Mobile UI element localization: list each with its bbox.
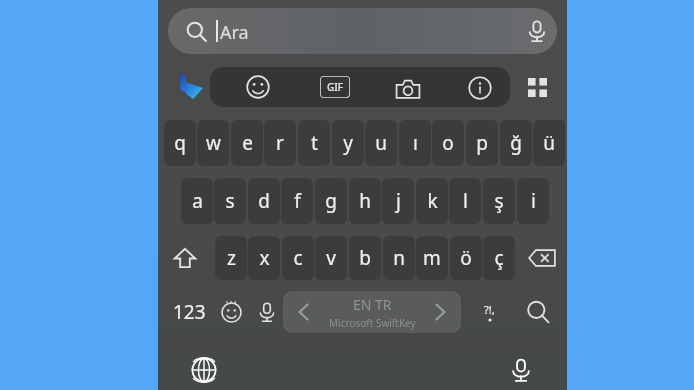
- button[interactable]: p: [466, 120, 498, 166]
- staticText: q: [174, 130, 186, 156]
- staticText: Ara: [220, 20, 249, 45]
- button[interactable]: q: [164, 120, 196, 166]
- staticText: Microsoft SwiftKey: [329, 316, 416, 330]
- button[interactable]: Backspace: [521, 236, 563, 280]
- staticText: j: [396, 188, 401, 214]
- staticText: t: [311, 130, 318, 156]
- staticText: EN TR: [353, 295, 392, 314]
- button[interactable]: Info: [468, 76, 492, 100]
- button[interactable]: c: [282, 236, 314, 280]
- staticText: p: [476, 130, 488, 156]
- staticText: 123: [173, 299, 206, 325]
- button[interactable]: ç: [483, 236, 515, 280]
- staticText: v: [326, 245, 336, 271]
- staticText: n: [393, 245, 405, 271]
- button[interactable]: e: [231, 120, 263, 166]
- button[interactable]: ü: [533, 120, 565, 166]
- button[interactable]: Bing: [174, 68, 210, 104]
- staticText: ş: [494, 188, 504, 214]
- button[interactable]: h: [349, 178, 381, 224]
- button[interactable]: Emoji: [214, 295, 248, 329]
- staticText: m: [423, 245, 441, 271]
- staticText: ü: [543, 130, 555, 156]
- button[interactable]: EN TR: [283, 291, 461, 333]
- staticText: a: [192, 188, 203, 214]
- button[interactable]: k: [416, 178, 448, 224]
- button[interactable]: Search: [516, 293, 560, 331]
- staticText: ğ: [510, 130, 522, 156]
- button[interactable]: Camera: [395, 76, 421, 102]
- button[interactable]: w: [197, 120, 229, 166]
- button[interactable]: r: [264, 120, 296, 166]
- button[interactable]: i: [517, 178, 549, 224]
- staticText: ı: [413, 130, 418, 156]
- staticText: GIF: [327, 80, 344, 94]
- staticText: ö: [460, 245, 472, 271]
- staticText: ç: [494, 245, 504, 271]
- staticText: ?!,: [484, 302, 495, 317]
- staticText: r: [276, 130, 284, 156]
- button[interactable]: b: [349, 236, 381, 280]
- button[interactable]: 123: [166, 293, 212, 331]
- button[interactable]: n: [383, 236, 415, 280]
- staticText: f: [294, 188, 301, 214]
- button[interactable]: t: [298, 120, 330, 166]
- button[interactable]: Emoji: [246, 75, 270, 99]
- button[interactable]: a: [181, 178, 213, 224]
- button[interactable]: Ara: [168, 8, 557, 54]
- button[interactable]: Shift: [164, 236, 206, 280]
- button[interactable]: m: [416, 236, 448, 280]
- staticText: o: [442, 130, 454, 156]
- staticText: l: [463, 188, 468, 214]
- button[interactable]: Voice input: [250, 295, 284, 329]
- button[interactable]: Voice search: [525, 19, 549, 43]
- button[interactable]: g: [315, 178, 347, 224]
- staticText: d: [258, 188, 270, 214]
- button[interactable]: o: [432, 120, 464, 166]
- button[interactable]: More: [520, 70, 554, 104]
- button[interactable]: GIF: [320, 76, 350, 98]
- staticText: u: [375, 130, 387, 156]
- button[interactable]: l: [449, 178, 481, 224]
- button[interactable]: z: [215, 236, 247, 280]
- staticText: g: [325, 188, 337, 214]
- button[interactable]: f: [281, 178, 313, 224]
- staticText: b: [359, 245, 371, 271]
- button[interactable]: s: [214, 178, 246, 224]
- button[interactable]: d: [248, 178, 280, 224]
- button[interactable]: u: [365, 120, 397, 166]
- button[interactable]: ğ: [500, 120, 532, 166]
- button[interactable]: ş: [483, 178, 515, 224]
- button[interactable]: x: [248, 236, 280, 280]
- button[interactable]: Language: [186, 352, 222, 388]
- staticText: z: [227, 245, 236, 271]
- button[interactable]: Voice assistant: [503, 352, 539, 388]
- button[interactable]: j: [382, 178, 414, 224]
- button[interactable]: ı: [399, 120, 431, 166]
- staticText: c: [293, 245, 303, 271]
- staticText: s: [225, 188, 235, 214]
- staticText: y: [343, 130, 353, 156]
- staticText: x: [259, 245, 270, 271]
- staticText: w: [206, 130, 221, 156]
- button[interactable]: y: [332, 120, 364, 166]
- button[interactable]: ö: [450, 236, 482, 280]
- button[interactable]: ?!,: [468, 293, 510, 331]
- staticText: i: [531, 188, 536, 214]
- staticText: e: [242, 130, 253, 156]
- button[interactable]: v: [315, 236, 347, 280]
- staticText: k: [427, 188, 438, 214]
- staticText: h: [359, 188, 371, 214]
